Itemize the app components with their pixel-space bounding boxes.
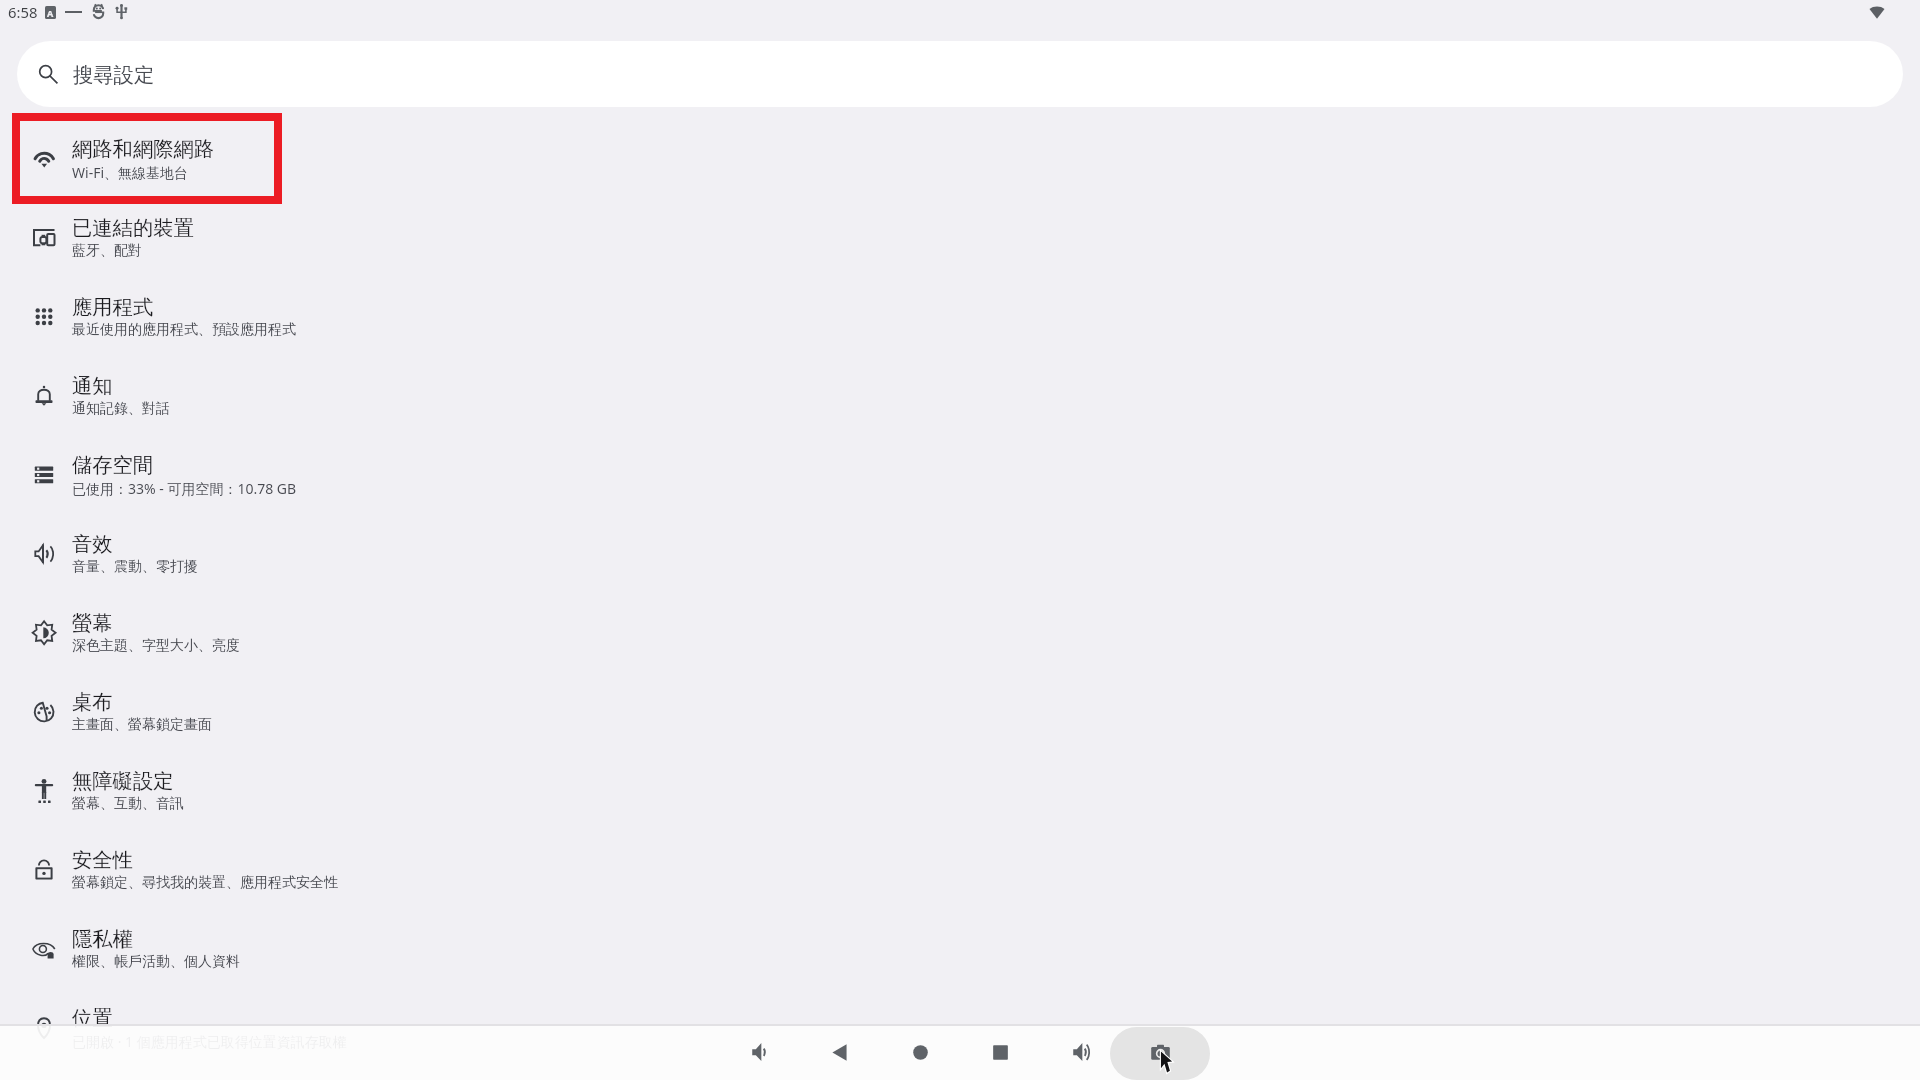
- staticText: A: [47, 7, 54, 19]
- staticText: 音效: [72, 531, 113, 557]
- button[interactable]: 安全性: [0, 830, 1920, 909]
- staticText: 權限、帳戶活動、個人資料: [72, 953, 240, 971]
- staticText: 安全性: [72, 847, 133, 873]
- button[interactable]: 音效: [0, 514, 1920, 593]
- button[interactable]: 已連結的裝置: [0, 198, 1920, 277]
- staticText: 位置: [72, 1005, 113, 1031]
- button[interactable]: Screenshot: [1140, 1032, 1180, 1072]
- button[interactable]: 螢幕: [0, 593, 1920, 672]
- button[interactable]: 儲存空間: [0, 435, 1920, 514]
- staticText: 應用程式: [72, 294, 154, 320]
- button[interactable]: 通知: [0, 356, 1920, 435]
- staticText: 6:58: [8, 2, 38, 22]
- button[interactable]: 隱私權: [0, 909, 1920, 988]
- button[interactable]: 桌布: [0, 672, 1920, 751]
- staticText: 通知: [72, 373, 113, 399]
- button[interactable]: Back: [819, 1032, 859, 1072]
- staticText: 隱私權: [72, 926, 133, 952]
- staticText: 網路和網際網路: [72, 136, 215, 162]
- staticText: 儲存空間: [72, 452, 154, 478]
- button[interactable]: Volume down: [739, 1032, 779, 1072]
- staticText: 通知記錄、對話: [72, 400, 170, 418]
- staticText: 螢幕鎖定、尋找我的裝置、應用程式安全性: [72, 874, 338, 892]
- button[interactable]: 位置: [0, 988, 1920, 1067]
- staticText: 已開啟 · 1 個應用程式已取得位置資訊存取權: [72, 1032, 347, 1051]
- staticText: 深色主題、字型大小、亮度: [72, 637, 240, 655]
- staticText: Wi-Fi、無線基地台: [72, 163, 189, 182]
- staticText: 藍牙、配對: [72, 242, 142, 260]
- button[interactable]: Volume up: [1060, 1032, 1100, 1072]
- button[interactable]: Take screenshot: [1110, 1027, 1210, 1080]
- button[interactable]: 網路和網際網路: [0, 119, 1920, 198]
- staticText: 桌布: [72, 689, 113, 715]
- staticText: 搜尋設定: [73, 62, 155, 88]
- staticText: 無障礙設定: [72, 768, 174, 794]
- button[interactable]: 搜尋設定: [17, 41, 1903, 107]
- staticText: 最近使用的應用程式、預設應用程式: [72, 321, 296, 339]
- button[interactable]: Home: [900, 1032, 940, 1072]
- button[interactable]: Overview: [980, 1032, 1020, 1072]
- button[interactable]: 無障礙設定: [0, 751, 1920, 830]
- staticText: 螢幕: [72, 610, 113, 636]
- staticText: 已連結的裝置: [72, 215, 194, 241]
- staticText: 已使用：33% - 可用空間：10.78 GB: [72, 479, 297, 498]
- staticText: 主畫面、螢幕鎖定畫面: [72, 716, 212, 734]
- staticText: 螢幕、互動、音訊: [72, 795, 184, 813]
- button[interactable]: 應用程式: [0, 277, 1920, 356]
- staticText: 音量、震動、零打擾: [72, 558, 198, 576]
